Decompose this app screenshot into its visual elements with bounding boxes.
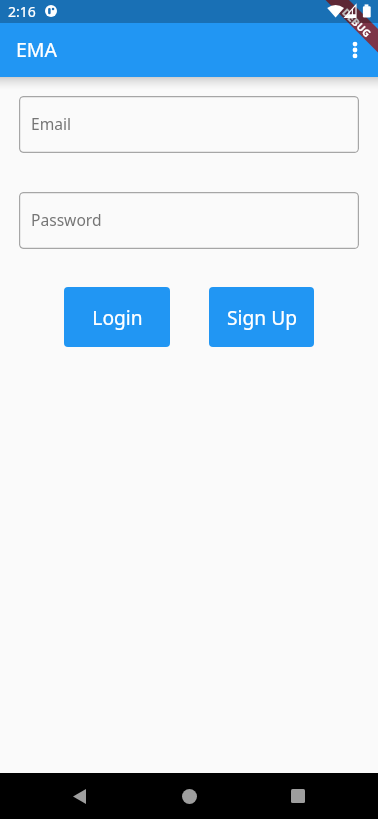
staticText: Password — [31, 209, 102, 230]
button[interactable]: Email — [19, 96, 359, 153]
button[interactable]: Home — [165, 773, 213, 819]
staticText: DEBUG — [339, 5, 375, 41]
button[interactable]: More options — [330, 26, 378, 74]
staticText: 2:16 — [8, 2, 36, 21]
staticText: EMA — [16, 36, 57, 63]
button[interactable]: Recent apps — [274, 773, 322, 819]
button[interactable]: Back — [55, 773, 103, 819]
button[interactable]: Login — [64, 287, 170, 347]
button[interactable]: Password — [19, 192, 359, 249]
button[interactable]: Sign Up — [209, 287, 314, 347]
staticText: Email — [31, 113, 72, 134]
staticText: Login — [92, 304, 143, 330]
staticText: Sign Up — [227, 304, 297, 330]
